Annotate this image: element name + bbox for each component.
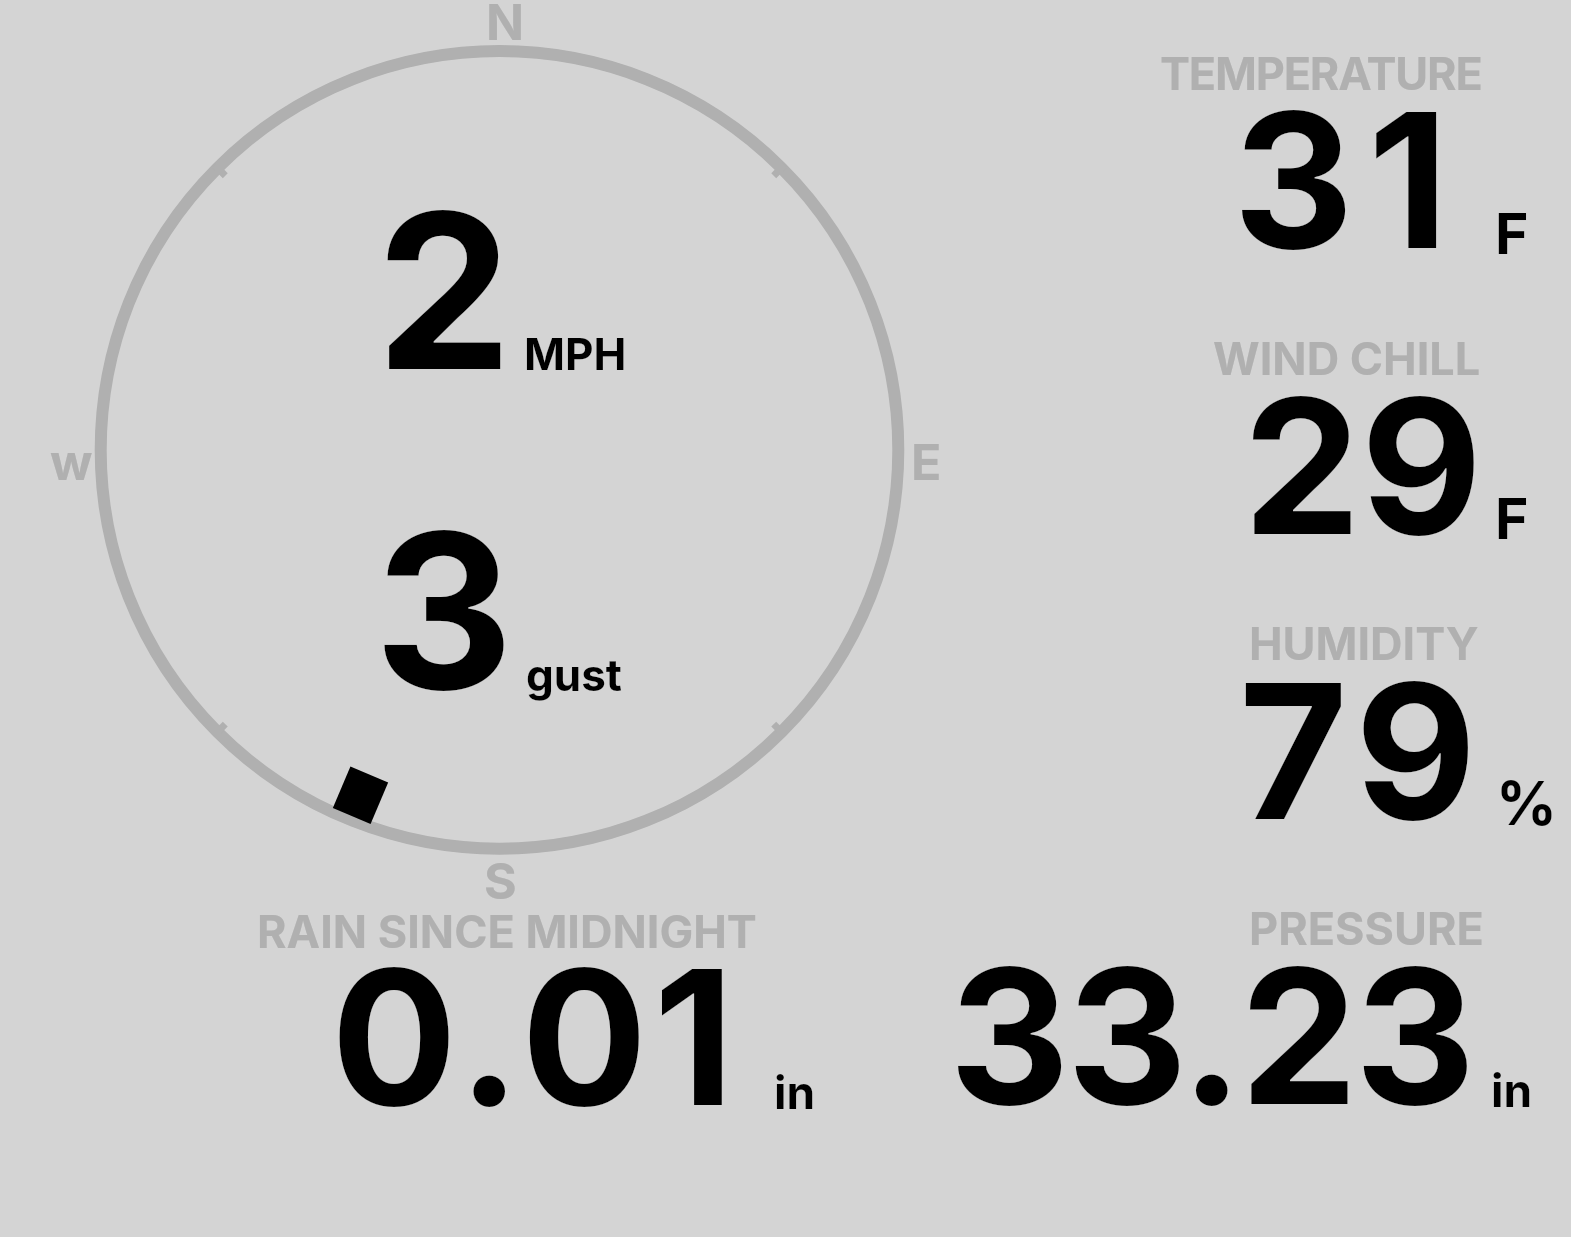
staticText: 33.23 bbox=[949, 923, 1473, 1148]
staticText: TEMPERATURE bbox=[1160, 46, 1482, 100]
staticText: PRESSURE bbox=[1249, 901, 1484, 955]
button[interactable]: Humidity 79 percent bbox=[1140, 610, 1570, 840]
staticText: in bbox=[1491, 1062, 1533, 1118]
staticText: N bbox=[486, 0, 525, 52]
staticText: in bbox=[774, 1064, 816, 1120]
staticText: F bbox=[1495, 199, 1529, 268]
staticText: HUMIDITY bbox=[1249, 616, 1479, 670]
button[interactable]: Rain since midnight 0.01 inches bbox=[240, 898, 840, 1123]
staticText: gust bbox=[526, 648, 622, 701]
staticText: 3 bbox=[374, 480, 514, 741]
staticText: E bbox=[911, 432, 942, 492]
staticText: 0.01 bbox=[331, 924, 741, 1149]
staticText: MPH bbox=[524, 327, 627, 380]
staticText: 79 bbox=[1239, 638, 1486, 864]
staticText: WIND CHILL bbox=[1213, 331, 1481, 385]
button[interactable]: Temperature 31 degrees Fahrenheit bbox=[1140, 40, 1570, 270]
staticText: % bbox=[1496, 767, 1557, 840]
staticText: 2 bbox=[376, 160, 513, 421]
staticText: 29 bbox=[1243, 353, 1483, 579]
staticText: 31 bbox=[1233, 67, 1463, 293]
staticText: RAIN SINCE MIDNIGHT bbox=[257, 904, 757, 958]
staticText: S bbox=[484, 851, 517, 911]
staticText: w bbox=[50, 432, 93, 492]
button[interactable]: Pressure 33.23 inches bbox=[940, 898, 1560, 1123]
button[interactable]: Wind direction compass bbox=[96, 46, 904, 854]
button[interactable]: Wind chill 29 degrees Fahrenheit bbox=[1140, 325, 1570, 555]
staticText: F bbox=[1495, 484, 1529, 553]
